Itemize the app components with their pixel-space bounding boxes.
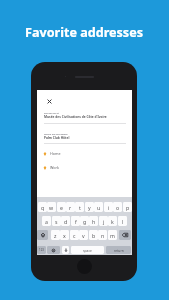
staticText: t (79, 204, 81, 211)
button[interactable]: q (38, 202, 47, 212)
staticText: Favorite addresses (25, 24, 144, 41)
button[interactable]: Backspace (119, 230, 131, 240)
staticText: b (92, 232, 96, 239)
button[interactable]: b (89, 230, 98, 240)
button[interactable]: t (75, 202, 84, 212)
button[interactable]: i (104, 202, 113, 212)
staticText: Home (50, 151, 61, 156)
button[interactable]: e (57, 202, 66, 212)
staticText: h (92, 218, 96, 225)
staticText: e (60, 204, 63, 211)
staticText: Work (50, 165, 60, 170)
staticText: Musée des Civilisations de Côte d'Ivoire (44, 115, 107, 119)
staticText: q (41, 204, 45, 211)
staticText: j (103, 218, 105, 225)
staticText: return (114, 248, 124, 252)
button[interactable]: z (51, 230, 60, 240)
button[interactable]: u (94, 202, 103, 212)
staticText: s (55, 218, 58, 225)
button[interactable]: r (66, 202, 75, 212)
button[interactable]: j (99, 216, 108, 226)
staticText: l (122, 218, 124, 225)
button[interactable]: y (85, 202, 94, 212)
staticText: a (45, 218, 48, 225)
button[interactable]: k (108, 216, 117, 226)
button[interactable]: a (42, 216, 51, 226)
button[interactable]: d (61, 216, 70, 226)
staticText: o (116, 204, 120, 211)
button[interactable]: g (80, 216, 89, 226)
button[interactable]: m (108, 230, 117, 240)
staticText: x (63, 232, 66, 239)
staticText: u (97, 204, 101, 211)
button[interactable]: f (71, 216, 80, 226)
staticText: Pick me up at (44, 112, 59, 115)
staticText: f (75, 218, 77, 225)
button[interactable]: Home (37, 147, 132, 160)
button[interactable]: Close (46, 98, 53, 105)
staticText: 123 (39, 248, 44, 252)
button[interactable]: l (118, 216, 127, 226)
button[interactable]: h (89, 216, 98, 226)
button[interactable]: w (47, 202, 56, 212)
staticText: Palm Club Hôtel (44, 136, 70, 140)
staticText: m (110, 232, 115, 239)
button[interactable]: o (113, 202, 122, 212)
button[interactable]: Emoji (47, 246, 60, 254)
staticText: Where are you going? (44, 133, 68, 136)
button[interactable]: Shift (37, 230, 48, 240)
button[interactable]: space (71, 246, 104, 254)
staticText: w (49, 204, 54, 211)
button[interactable]: s (52, 216, 61, 226)
staticText: d (64, 218, 68, 225)
staticText: k (111, 218, 114, 225)
staticText: r (69, 204, 72, 211)
button[interactable]: Dictate (62, 246, 69, 254)
staticText: n (101, 232, 105, 239)
staticText: v (82, 232, 85, 239)
button[interactable]: Work (37, 161, 132, 174)
staticText: c (73, 232, 76, 239)
staticText: y (88, 204, 91, 211)
button[interactable]: x (60, 230, 69, 240)
button[interactable]: 123 (37, 246, 46, 254)
staticText: i (108, 204, 110, 211)
button[interactable]: p (123, 202, 132, 212)
staticText: g (83, 218, 87, 225)
button[interactable]: n (98, 230, 107, 240)
button[interactable]: v (79, 230, 88, 240)
staticText: p (126, 204, 130, 211)
staticText: z (54, 232, 57, 239)
staticText: space (83, 248, 92, 252)
button[interactable]: return (106, 246, 131, 254)
button[interactable]: c (70, 230, 79, 240)
